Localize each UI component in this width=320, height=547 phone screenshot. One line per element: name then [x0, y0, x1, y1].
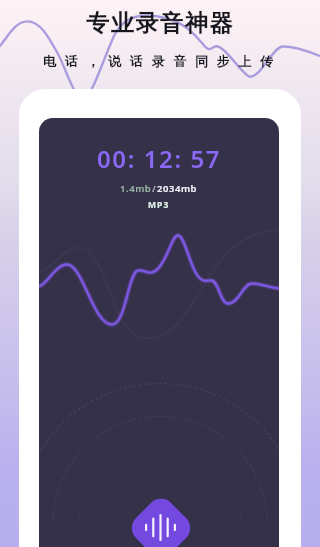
staticText: 1.4mb: [120, 182, 152, 195]
staticText: MP3: [148, 199, 170, 211]
staticText: 00: 12: 57: [97, 142, 222, 175]
staticText: 电话，说话录音同步上传: [43, 53, 282, 69]
staticText: 2034mb: [157, 182, 198, 195]
button[interactable]: Record: [129, 496, 193, 547]
staticText: 专业录音神器: [86, 9, 235, 38]
staticText: /: [152, 182, 157, 195]
